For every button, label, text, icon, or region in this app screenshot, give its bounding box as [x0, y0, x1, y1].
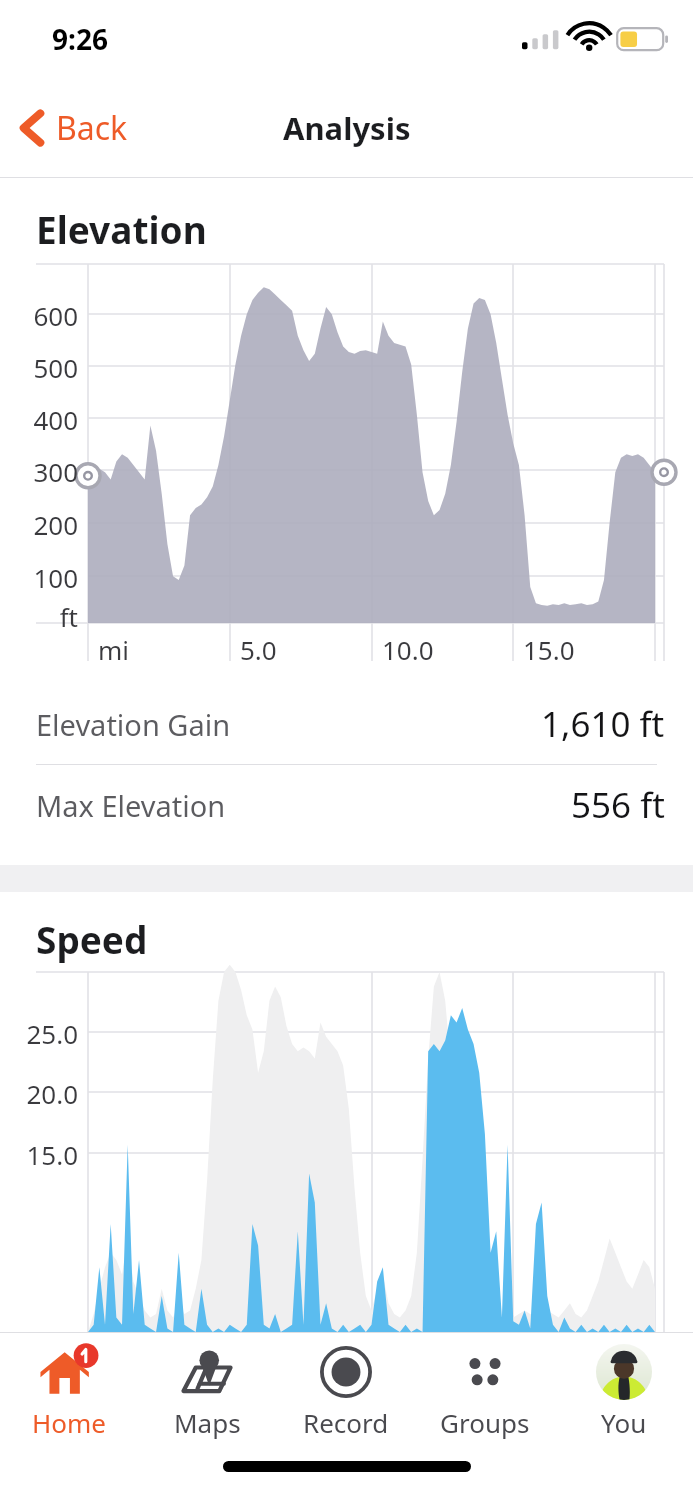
- staticText: 600: [0, 298, 78, 333]
- button[interactable]: Groups: [415, 1333, 554, 1449]
- staticText: 200: [0, 507, 78, 542]
- staticText: 5.0: [240, 632, 277, 667]
- other: Maps: [179, 1344, 235, 1400]
- staticText: Maps: [174, 1405, 241, 1440]
- staticText: 300: [0, 454, 78, 489]
- other: Home, 1 notification: [38, 1341, 100, 1403]
- staticText: Record: [303, 1405, 389, 1440]
- staticText: 500: [0, 350, 78, 385]
- staticText: 20.0: [0, 1076, 78, 1111]
- staticText: 100: [0, 560, 78, 595]
- other: Groups: [457, 1344, 513, 1400]
- staticText: Elevation Gain: [36, 705, 231, 744]
- staticText: Max Elevation: [36, 786, 226, 825]
- other: Record: [318, 1344, 374, 1400]
- staticText: 400: [0, 402, 78, 437]
- button[interactable]: Elevation Gain: [0, 684, 693, 764]
- other: You, profile: [596, 1344, 652, 1400]
- button[interactable]: Record: [276, 1333, 415, 1449]
- staticText: 556 ft: [571, 781, 665, 829]
- staticText: Home: [32, 1405, 106, 1440]
- staticText: Analysis: [283, 107, 411, 149]
- button[interactable]: You, profile: [554, 1333, 693, 1449]
- button[interactable]: Back: [0, 96, 146, 160]
- staticText: 10.0: [382, 632, 434, 667]
- staticText: 15.0: [0, 1137, 78, 1172]
- button[interactable]: Home, 1 notification: [0, 1333, 138, 1449]
- staticText: mi: [98, 632, 130, 667]
- button[interactable]: Max Elevation: [0, 765, 693, 845]
- staticText: Elevation: [36, 204, 207, 254]
- staticText: Groups: [440, 1405, 530, 1440]
- staticText: You: [601, 1405, 647, 1440]
- staticText: Speed: [36, 914, 148, 964]
- staticText: 9:26: [52, 20, 108, 58]
- button[interactable]: Maps: [138, 1333, 276, 1449]
- staticText: 25.0: [0, 1016, 78, 1051]
- staticText: Back: [56, 106, 128, 150]
- staticText: ft: [0, 599, 78, 634]
- staticText: 1,610 ft: [541, 700, 665, 748]
- staticText: 15.0: [523, 632, 575, 667]
